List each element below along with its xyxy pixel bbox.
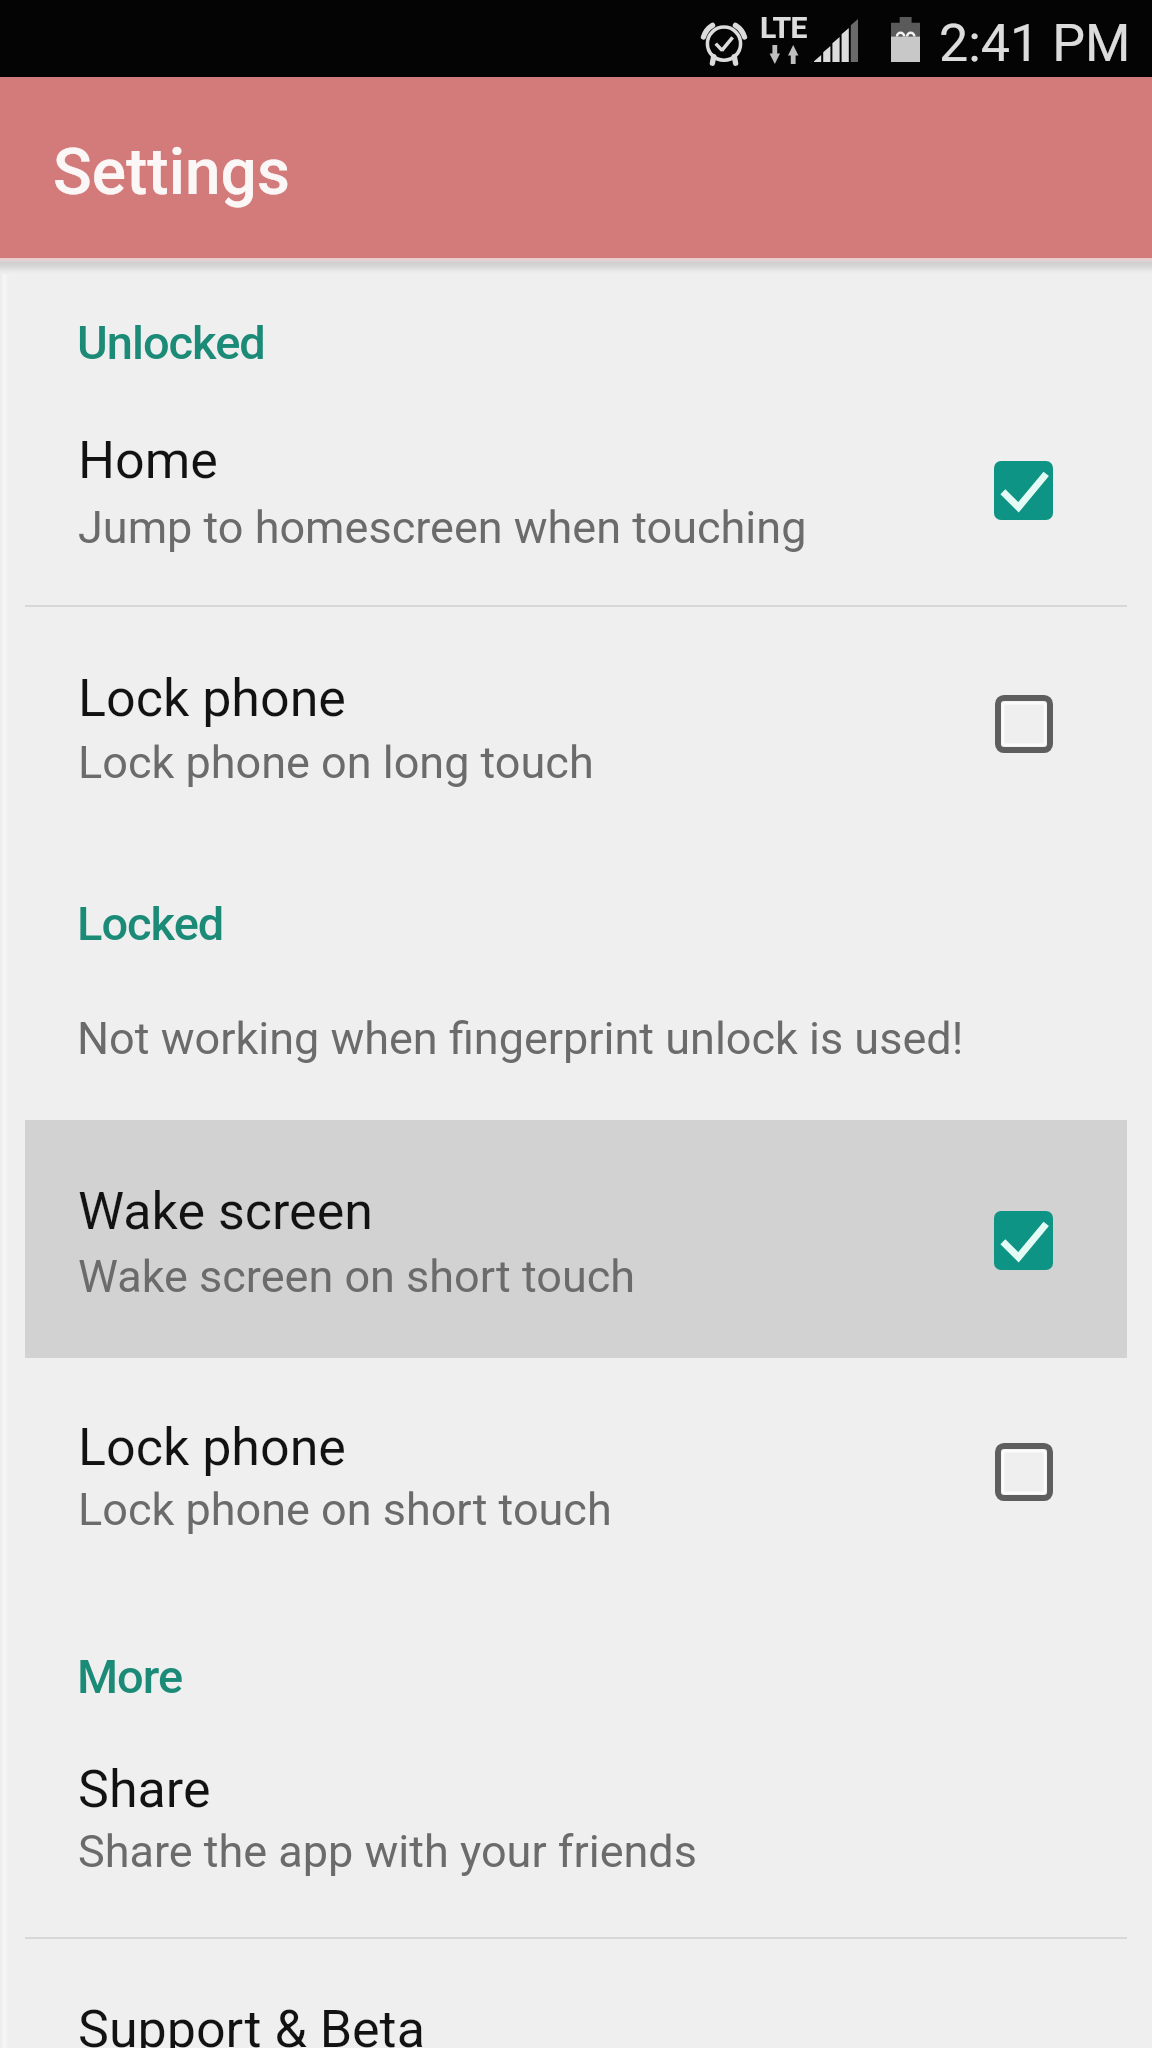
- staticText: LTE: [760, 10, 807, 45]
- button[interactable]: Lock phone: [0, 1358, 1152, 1563]
- staticText: Locked: [77, 896, 224, 951]
- button[interactable]: Enabled, tap to turn off: [993, 460, 1053, 520]
- staticText: Settings: [53, 135, 290, 210]
- staticText: Lock phone on short touch: [78, 1483, 612, 1536]
- other: LTE data active: [760, 10, 807, 64]
- staticText: More: [77, 1649, 183, 1704]
- button[interactable]: Home: [0, 400, 1152, 605]
- button[interactable]: Support & Beta: [0, 1950, 1152, 2048]
- button[interactable]: Lock phone: [0, 607, 1152, 817]
- staticText: Share: [78, 1759, 211, 1820]
- staticText: Home: [78, 430, 218, 491]
- staticText: Wake screen on short touch: [78, 1250, 636, 1303]
- other: Signal strength: [814, 19, 858, 62]
- staticText: Lock phone on long touch: [78, 736, 594, 789]
- staticText: 2:41 PM: [939, 13, 1131, 74]
- staticText: Not working when fingerprint unlock is u…: [77, 1012, 964, 1065]
- staticText: Lock phone: [78, 668, 346, 729]
- staticText: Share the app with your friends: [78, 1825, 697, 1878]
- staticText: Jump to homescreen when touching: [78, 501, 807, 554]
- staticText: Wake screen: [78, 1181, 373, 1242]
- staticText: Unlocked: [77, 315, 265, 370]
- staticText: Support & Beta: [78, 1999, 425, 2048]
- button[interactable]: Wake screen: [0, 1120, 1152, 1358]
- button[interactable]: Disabled, tap to turn on: [995, 695, 1053, 753]
- other: Alarm set: [703, 17, 745, 65]
- button[interactable]: Disabled, tap to turn on: [995, 1443, 1053, 1501]
- other: Battery 60 percent: [891, 17, 920, 62]
- button[interactable]: Share: [0, 1726, 1152, 1918]
- staticText: Lock phone: [78, 1417, 346, 1478]
- button[interactable]: Enabled, tap to turn off: [993, 1210, 1053, 1270]
